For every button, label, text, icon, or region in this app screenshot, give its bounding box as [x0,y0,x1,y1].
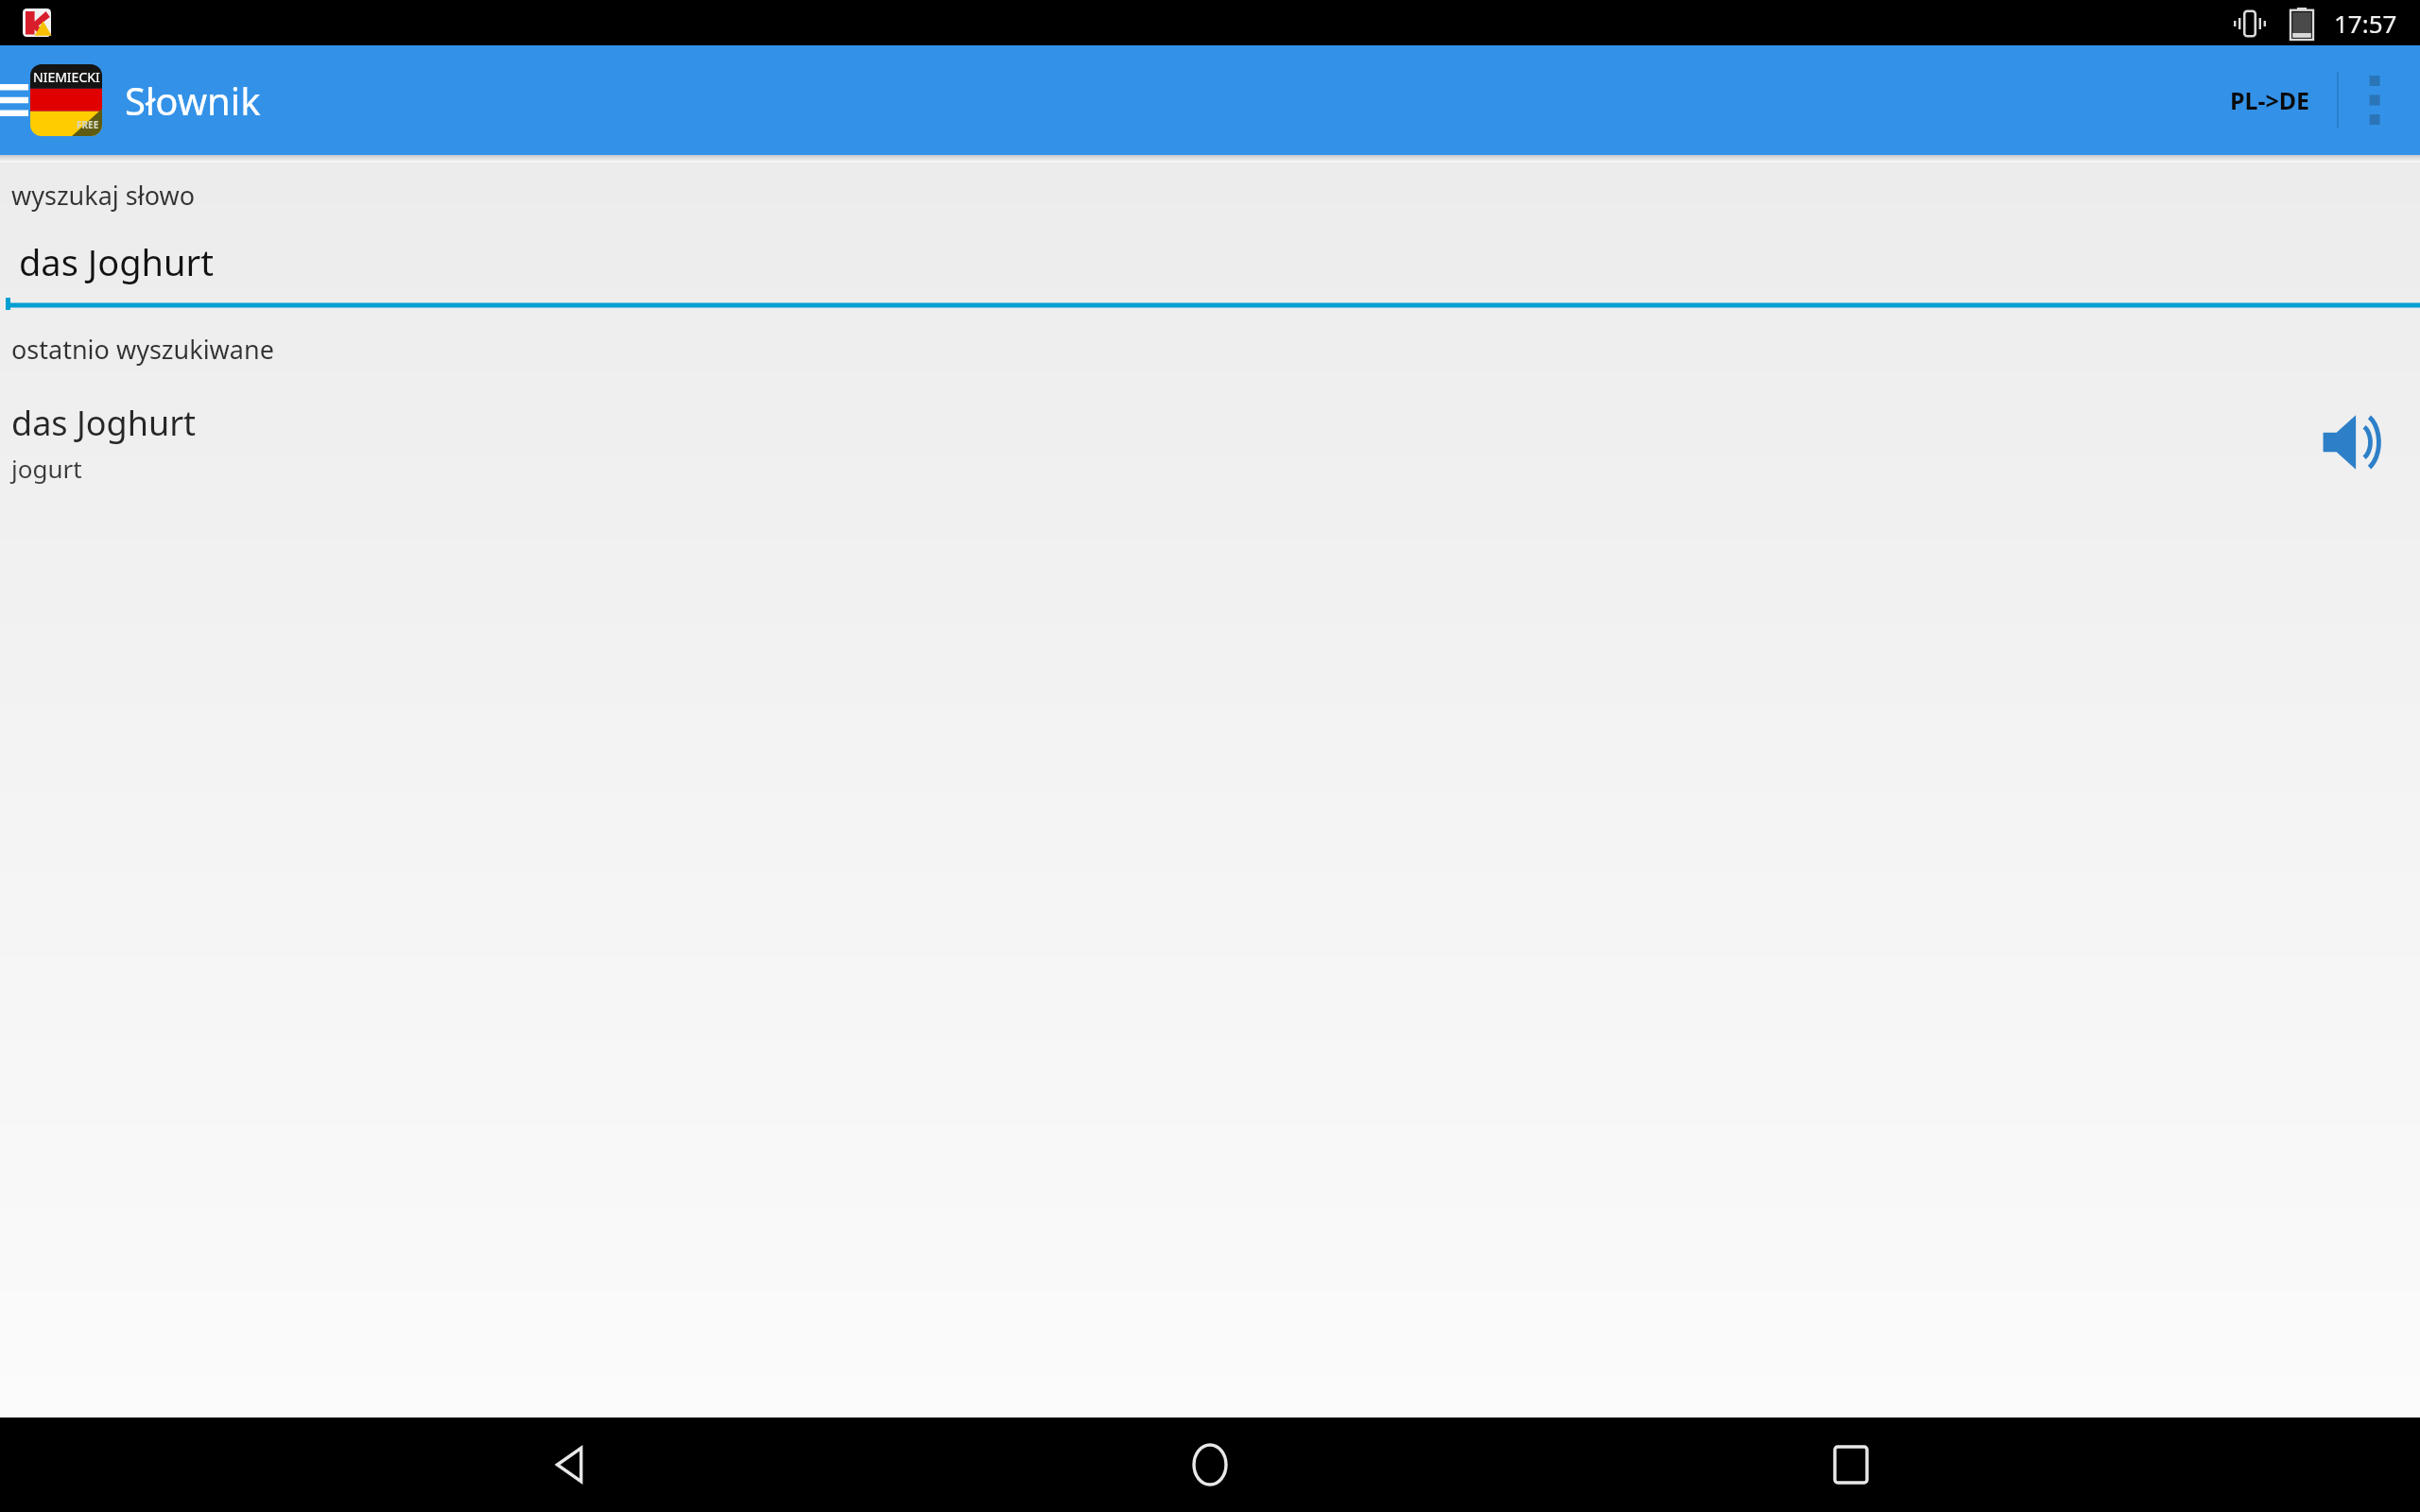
button[interactable]: Home [1139,1417,1281,1512]
staticText: das Joghurt [19,237,214,286]
staticText: FREE [77,118,99,131]
staticText: wyszukaj słowo [11,178,196,213]
button[interactable]: More options [2339,45,2411,155]
staticText: das Joghurt [11,400,197,446]
button[interactable]: NIEMIECKI [30,64,261,136]
button[interactable]: Back [499,1417,641,1512]
button[interactable]: das Joghurt [0,237,2420,311]
button[interactable]: das Joghurt [0,389,2420,495]
staticText: PL->DE [2230,84,2310,116]
staticText: ostatnio wyszukiwane [11,332,274,367]
button[interactable]: Recent apps [1780,1417,1922,1512]
button[interactable]: Play pronunciation [2307,389,2395,495]
staticText: 17:57 [2334,7,2397,40]
staticText: Słownik [125,75,261,126]
staticText: NIEMIECKI [33,68,100,86]
button[interactable]: PL->DE [2204,45,2337,155]
staticText: jogurt [11,452,82,485]
button[interactable]: Open navigation drawer [0,45,28,155]
